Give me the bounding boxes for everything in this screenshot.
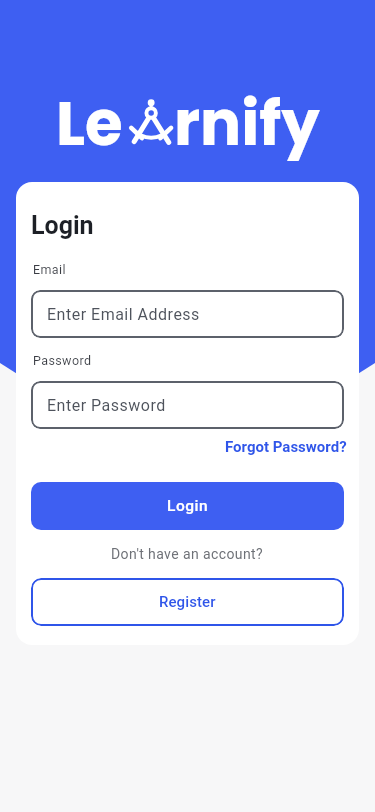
button[interactable]: Login bbox=[31, 482, 344, 530]
staticText: Don't have an account? bbox=[111, 546, 264, 562]
button[interactable]: Forgot Password? bbox=[225, 438, 347, 456]
staticText: Enter Password bbox=[47, 396, 166, 415]
staticText: Register bbox=[159, 593, 216, 611]
staticText: Login bbox=[31, 211, 94, 240]
staticText: Email bbox=[33, 262, 66, 277]
staticText: Login bbox=[167, 497, 209, 515]
button[interactable]: Register bbox=[31, 578, 344, 626]
staticText: Le bbox=[56, 81, 123, 166]
button[interactable]: Enter Password bbox=[31, 381, 344, 429]
button[interactable]: Enter Email Address bbox=[31, 290, 344, 338]
staticText: rnify bbox=[174, 81, 320, 166]
staticText: Password bbox=[33, 353, 92, 368]
staticText: Enter Email Address bbox=[47, 305, 200, 324]
